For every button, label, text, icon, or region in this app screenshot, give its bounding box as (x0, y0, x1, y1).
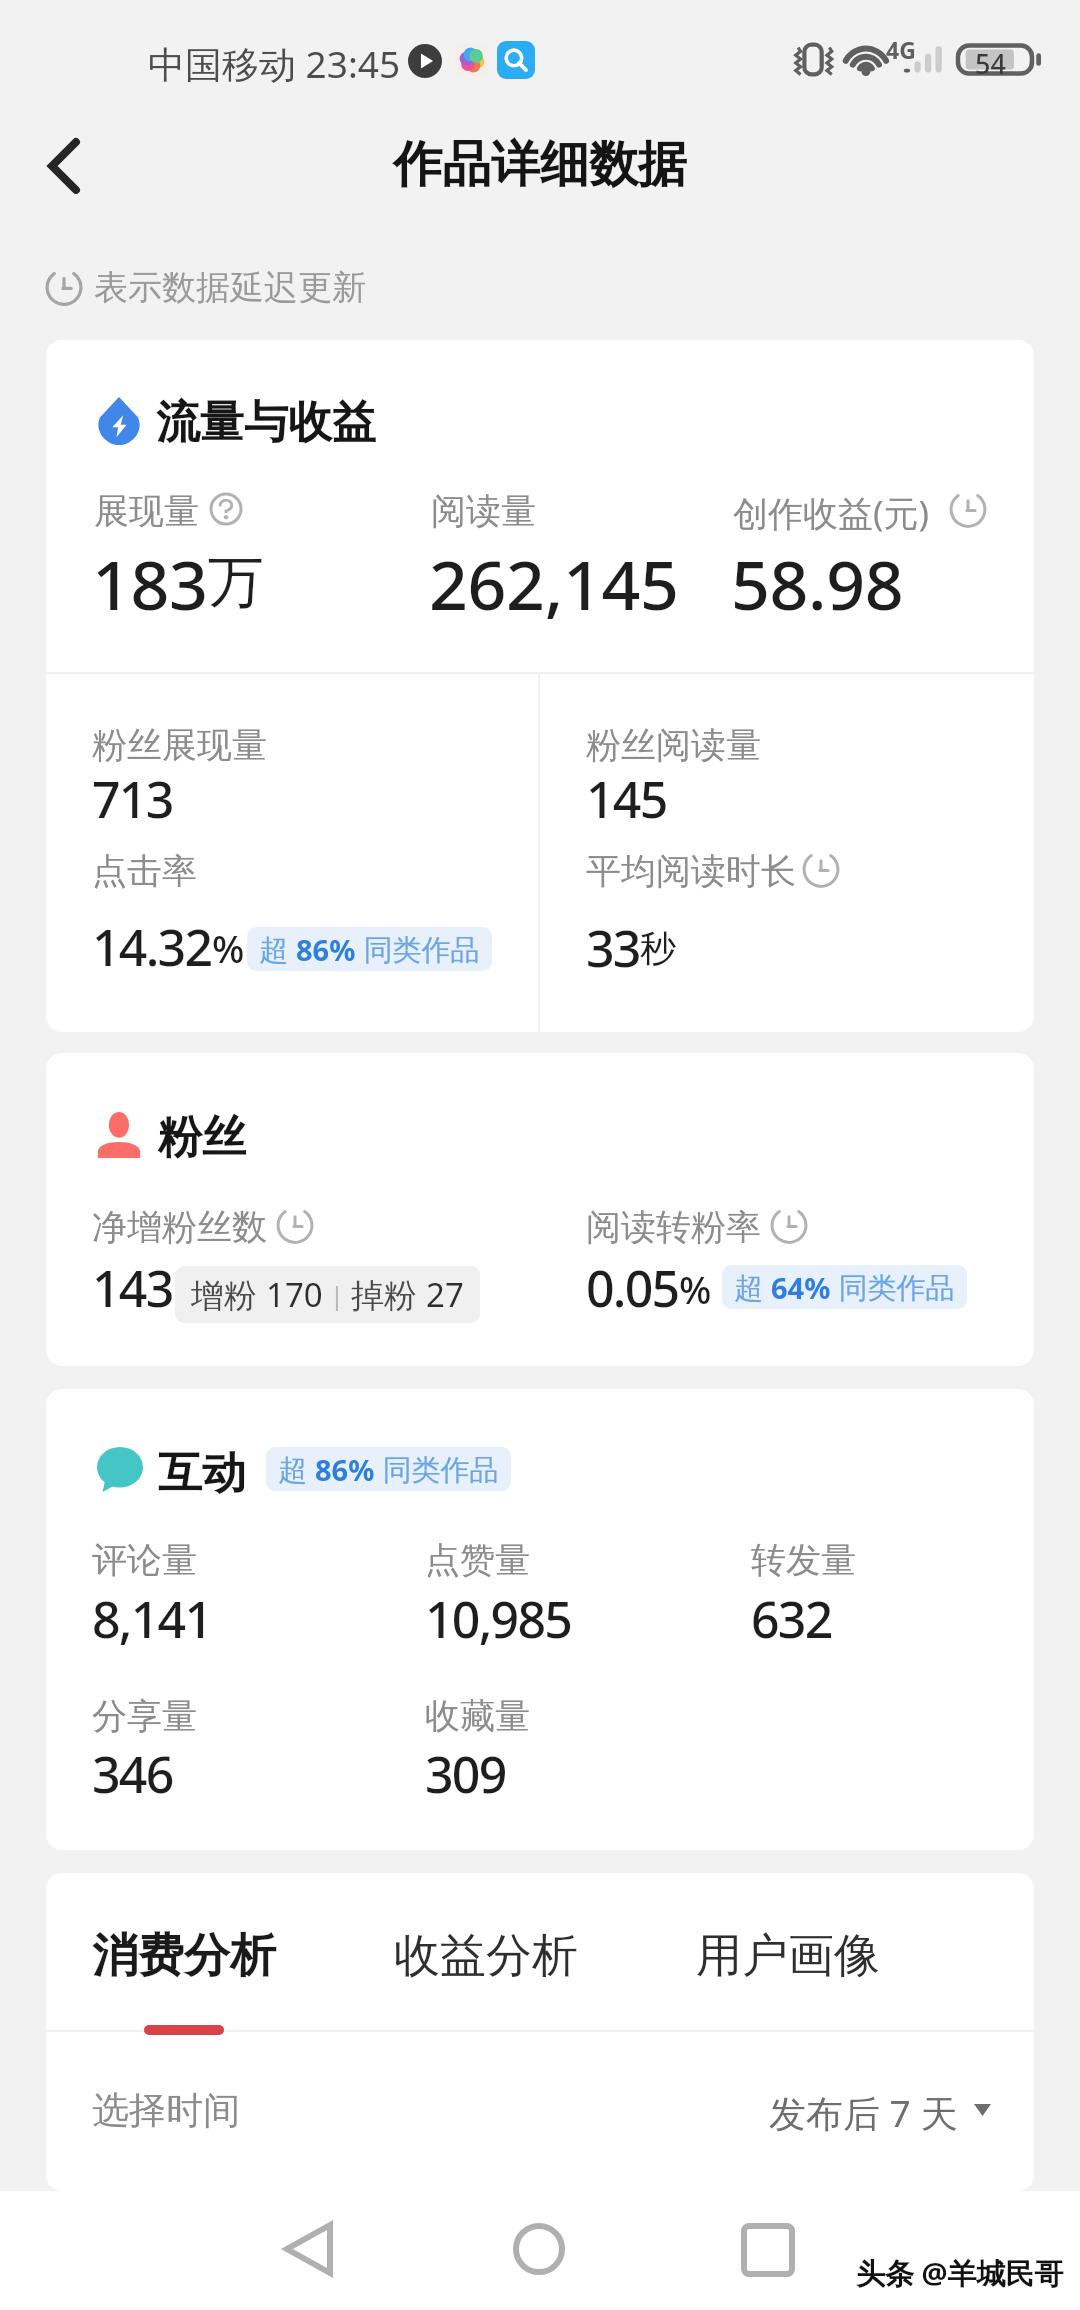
staticText: 10,985 (425, 1585, 572, 1653)
staticText: 头条 @羊城民哥 (856, 2253, 1064, 2293)
staticText: 净增粉丝数 (92, 1205, 267, 1249)
staticText: 86% (296, 930, 356, 969)
staticText: 0.05 (586, 1254, 679, 1322)
staticText: 4G (886, 34, 916, 65)
staticText: 262,145 (429, 537, 679, 630)
staticText: 粉丝展现量 (92, 723, 267, 767)
button[interactable]: 发布后 7 天 (769, 2087, 991, 2138)
staticText: 平均阅读时长 (586, 849, 796, 893)
staticText: 作品详细数据 (393, 134, 687, 196)
staticText: 8,141 (92, 1585, 212, 1653)
staticText: 万 (208, 547, 264, 618)
staticText: 14.32 (92, 913, 212, 981)
staticText: 阅读转粉率 (586, 1205, 761, 1249)
staticText: 632 (751, 1585, 832, 1653)
staticText: 选择时间 (92, 2087, 240, 2134)
staticText: 展现量 (94, 489, 199, 533)
button[interactable]: Recents (723, 2205, 813, 2295)
staticText: 54 (975, 45, 1006, 82)
staticText: 64% (771, 1268, 831, 1307)
staticText: 表示数据延迟更新 (94, 266, 366, 309)
staticText: | (323, 1277, 351, 1312)
staticText: 中国移动 23:45 (148, 38, 401, 89)
staticText: 秒 (640, 926, 676, 971)
staticText: 27 (426, 1272, 464, 1317)
staticText: 346 (92, 1740, 173, 1808)
staticText: 粉丝阅读量 (586, 723, 761, 767)
button[interactable]: 收益分析 (374, 1907, 598, 2005)
staticText: 309 (425, 1740, 506, 1808)
staticText: 转发量 (751, 1538, 856, 1582)
staticText: 33 (586, 914, 640, 982)
staticText: 评论量 (92, 1538, 197, 1582)
staticText: 超 (278, 1449, 315, 1489)
staticText: 同类作品 (831, 1267, 955, 1307)
staticText: 阅读量 (431, 489, 536, 533)
staticText: 流量与收益 (156, 395, 376, 450)
staticText: 超 (259, 929, 296, 969)
button[interactable]: 用户画像 (676, 1907, 900, 2005)
staticText: 增粉 (191, 1272, 266, 1317)
staticText: 143 (92, 1254, 173, 1322)
staticText: 消费分析 (92, 1927, 276, 1985)
staticText: 互动 (158, 1446, 246, 1501)
staticText: 170 (266, 1272, 323, 1317)
button[interactable]: Home (494, 2204, 584, 2294)
staticText: 发布后 7 天 (769, 2087, 958, 2138)
staticText: 同类作品 (375, 1449, 499, 1489)
staticText: 掉粉 (351, 1272, 426, 1317)
button[interactable]: Back (26, 128, 102, 204)
staticText: 同类作品 (356, 929, 480, 969)
staticText: 超 (734, 1267, 771, 1307)
staticText: % (679, 1263, 712, 1315)
staticText: 58.98 (731, 537, 904, 630)
staticText: 收藏量 (425, 1694, 530, 1738)
staticText: % (212, 922, 245, 974)
staticText: 分享量 (92, 1694, 197, 1738)
staticText: 86% (315, 1450, 375, 1489)
staticText: 713 (92, 765, 173, 833)
staticText: 粉丝 (158, 1110, 246, 1165)
staticText: 收益分析 (394, 1927, 578, 1985)
staticText: 创作收益(元) (733, 489, 930, 537)
staticText: 用户画像 (696, 1927, 880, 1985)
staticText: 183 (92, 537, 208, 630)
staticText: 145 (586, 765, 667, 833)
staticText: 点击率 (92, 849, 197, 893)
staticText: 点赞量 (425, 1538, 530, 1582)
button[interactable]: Back (263, 2204, 353, 2294)
button[interactable]: 消费分析 (72, 1907, 296, 2005)
